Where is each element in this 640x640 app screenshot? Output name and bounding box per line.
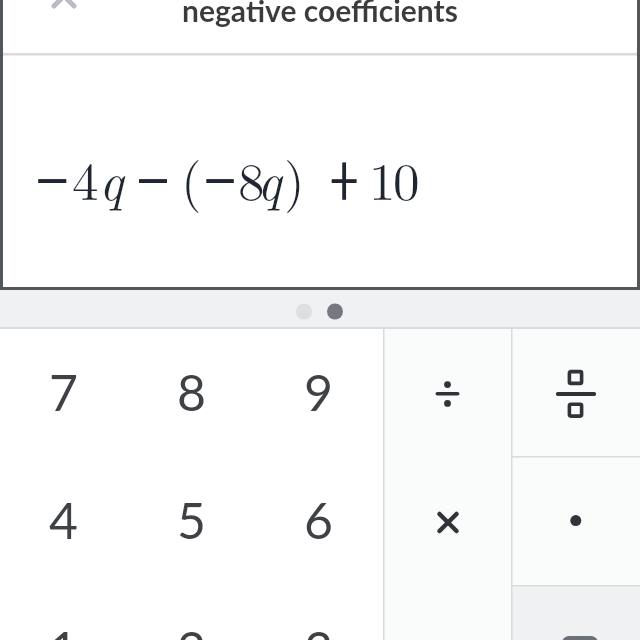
staticText: q (257, 140, 282, 215)
staticText: 1 (369, 140, 396, 215)
button[interactable]: 2 (128, 585, 256, 640)
staticText: 0 (393, 140, 420, 215)
button[interactable]: 1 (0, 585, 128, 640)
button[interactable]: 6 (255, 456, 383, 584)
staticText: 6 (304, 490, 334, 550)
staticText: 1 (49, 619, 79, 640)
button[interactable]: 7 (0, 328, 128, 456)
staticText: 5 (177, 490, 207, 550)
button[interactable] (511, 329, 640, 457)
staticText: ) (284, 140, 305, 215)
button[interactable] (383, 457, 511, 585)
staticText: 9 (304, 362, 334, 422)
staticText: 7 (49, 362, 79, 422)
staticText: 8 (177, 362, 207, 422)
button[interactable]: 5 (128, 456, 256, 584)
staticText: ( (181, 140, 202, 215)
button[interactable] (511, 457, 640, 585)
staticText: 2 (177, 619, 207, 640)
staticText: 3 (304, 619, 334, 640)
button[interactable]: 9 (255, 328, 383, 456)
button[interactable]: 4 (0, 456, 128, 584)
staticText: 4 (49, 490, 79, 550)
staticText: 4 (72, 140, 99, 215)
button[interactable]: 3 (255, 585, 383, 640)
staticText: q (99, 140, 124, 215)
button[interactable] (44, 0, 84, 16)
staticText: 8 (238, 140, 265, 215)
button[interactable] (383, 329, 511, 457)
button[interactable]: 8 (128, 328, 256, 456)
button[interactable] (511, 586, 640, 640)
staticText: negative coefficients (182, 0, 458, 28)
